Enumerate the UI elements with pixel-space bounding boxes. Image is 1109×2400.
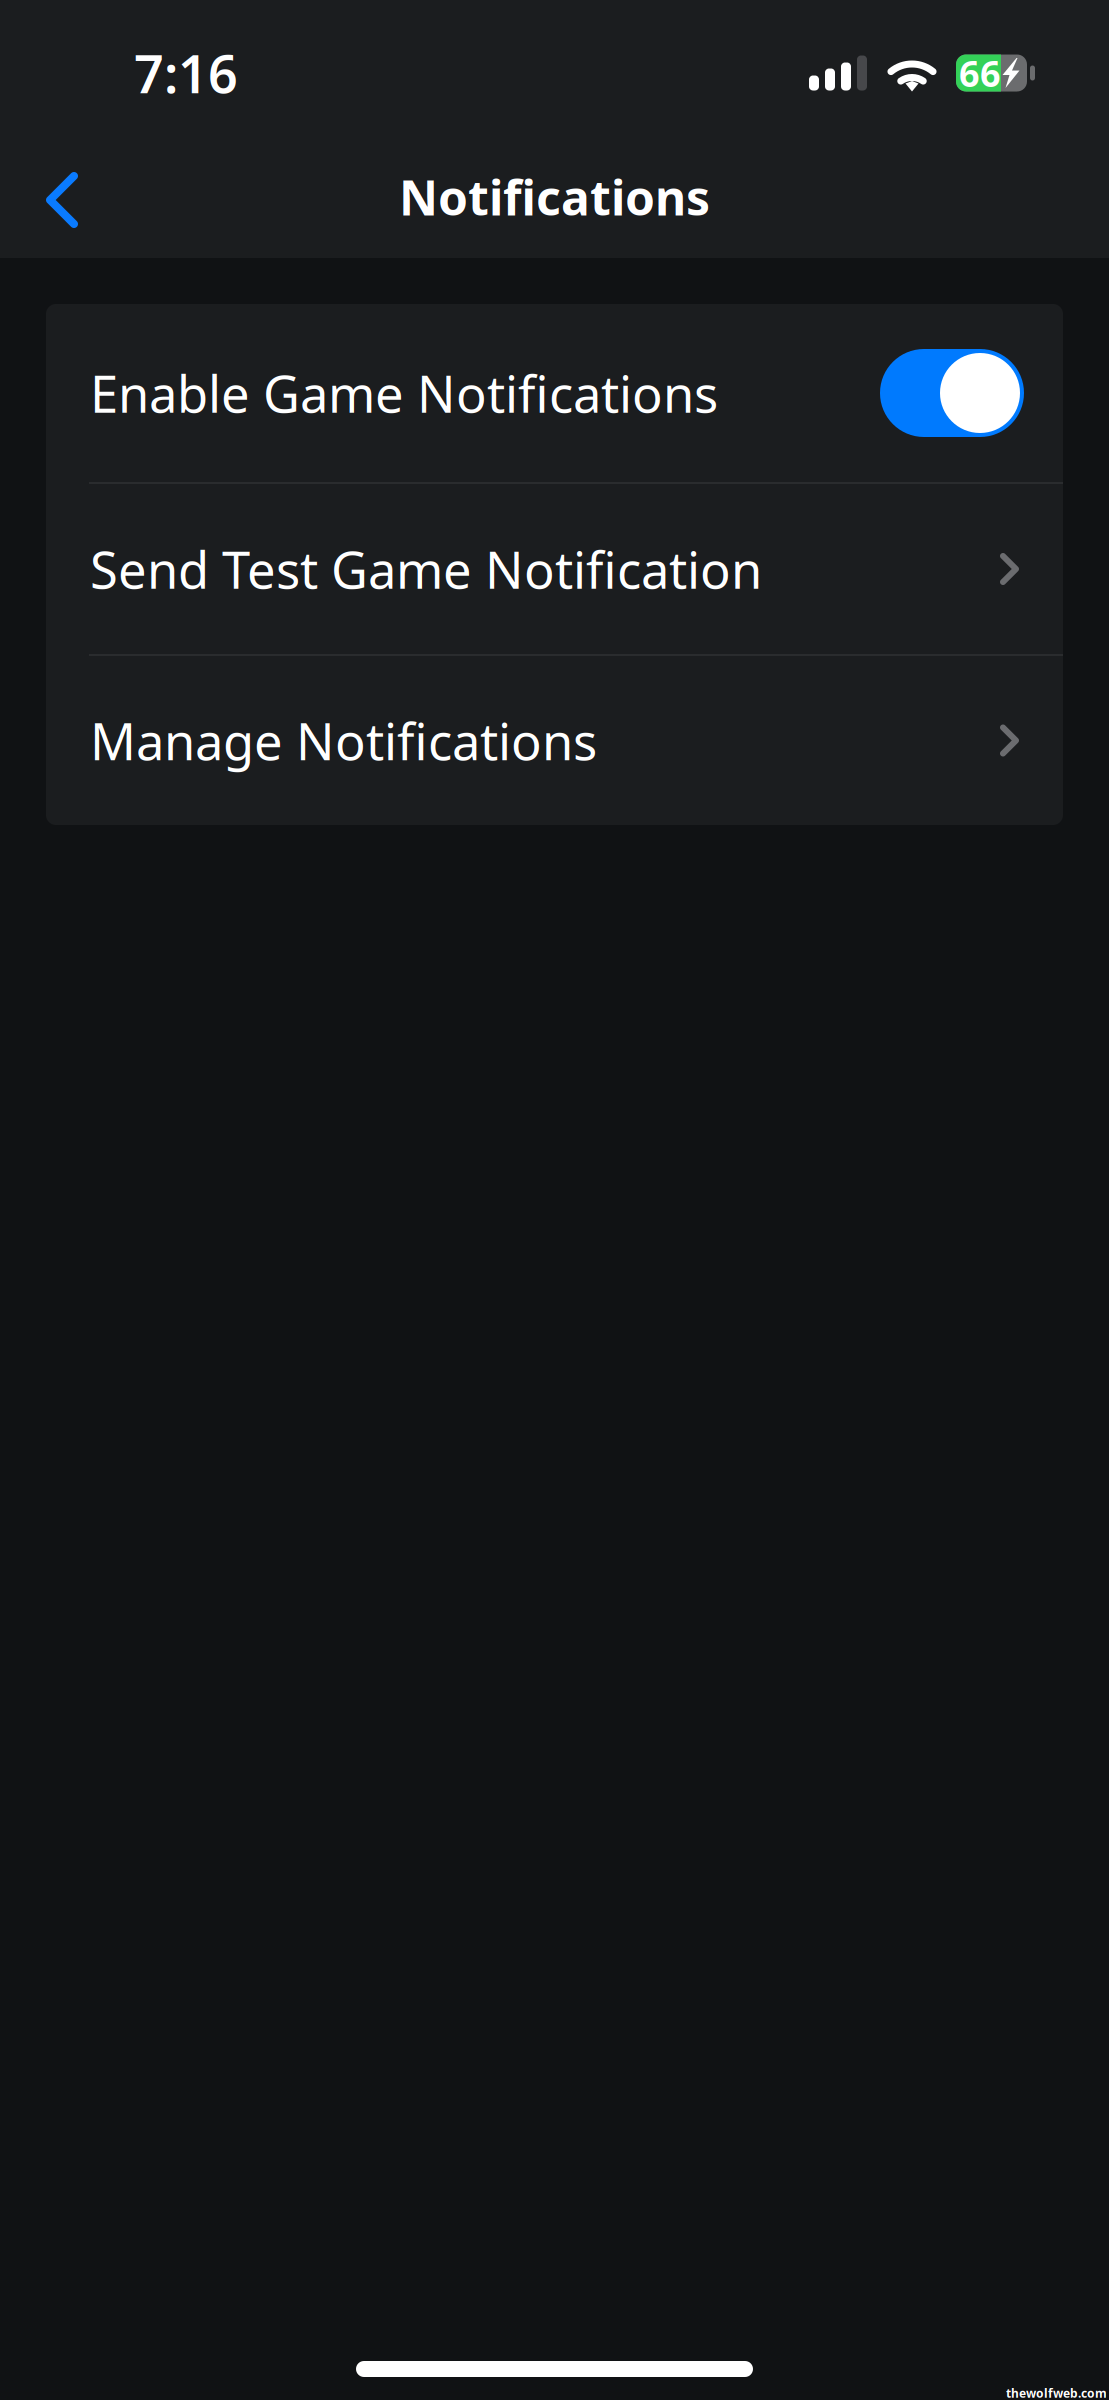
staticText: Send Test Game Notification: [90, 535, 762, 603]
staticText: Notifications: [399, 165, 710, 229]
button[interactable]: Manage Notifications: [46, 656, 1063, 825]
button[interactable]: Back: [45, 149, 133, 245]
staticText: Enable Game Notifications: [90, 359, 718, 427]
staticText: Manage Notifications: [90, 707, 597, 774]
button[interactable]: Enable Game Notifications: [46, 304, 1063, 482]
staticText: thewolfweb.com: [1006, 2385, 1107, 2400]
staticText: 7:16: [134, 38, 238, 108]
button[interactable]: Send Test Game Notification: [46, 484, 1063, 654]
staticText: 66: [959, 49, 1001, 97]
